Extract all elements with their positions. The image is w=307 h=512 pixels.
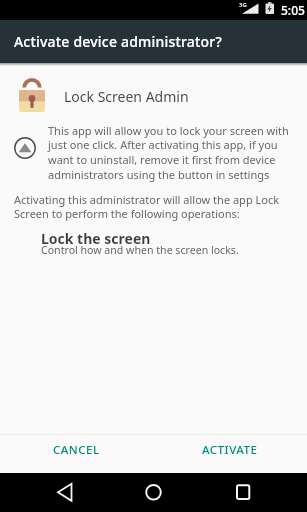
staticText: CANCEL [53,442,100,458]
staticText: Lock the screen [41,229,151,248]
button[interactable] [103,473,205,512]
staticText: Control how and when the screen locks. [41,243,239,257]
button[interactable] [205,473,307,512]
staticText: This app will allow you to lock your scr… [48,123,294,183]
staticText: Activate device administrator? [14,32,222,51]
staticText: Lock Screen Admin [64,87,189,106]
staticText: 5:05 [281,2,305,18]
button[interactable] [0,473,103,512]
staticText: ACTIVATE [202,442,258,458]
button[interactable]: CANCEL [0,435,153,473]
staticText: 3G [239,1,247,9]
button[interactable]: ACTIVATE [153,435,307,473]
staticText: Activating this administrator will allow… [14,192,283,222]
